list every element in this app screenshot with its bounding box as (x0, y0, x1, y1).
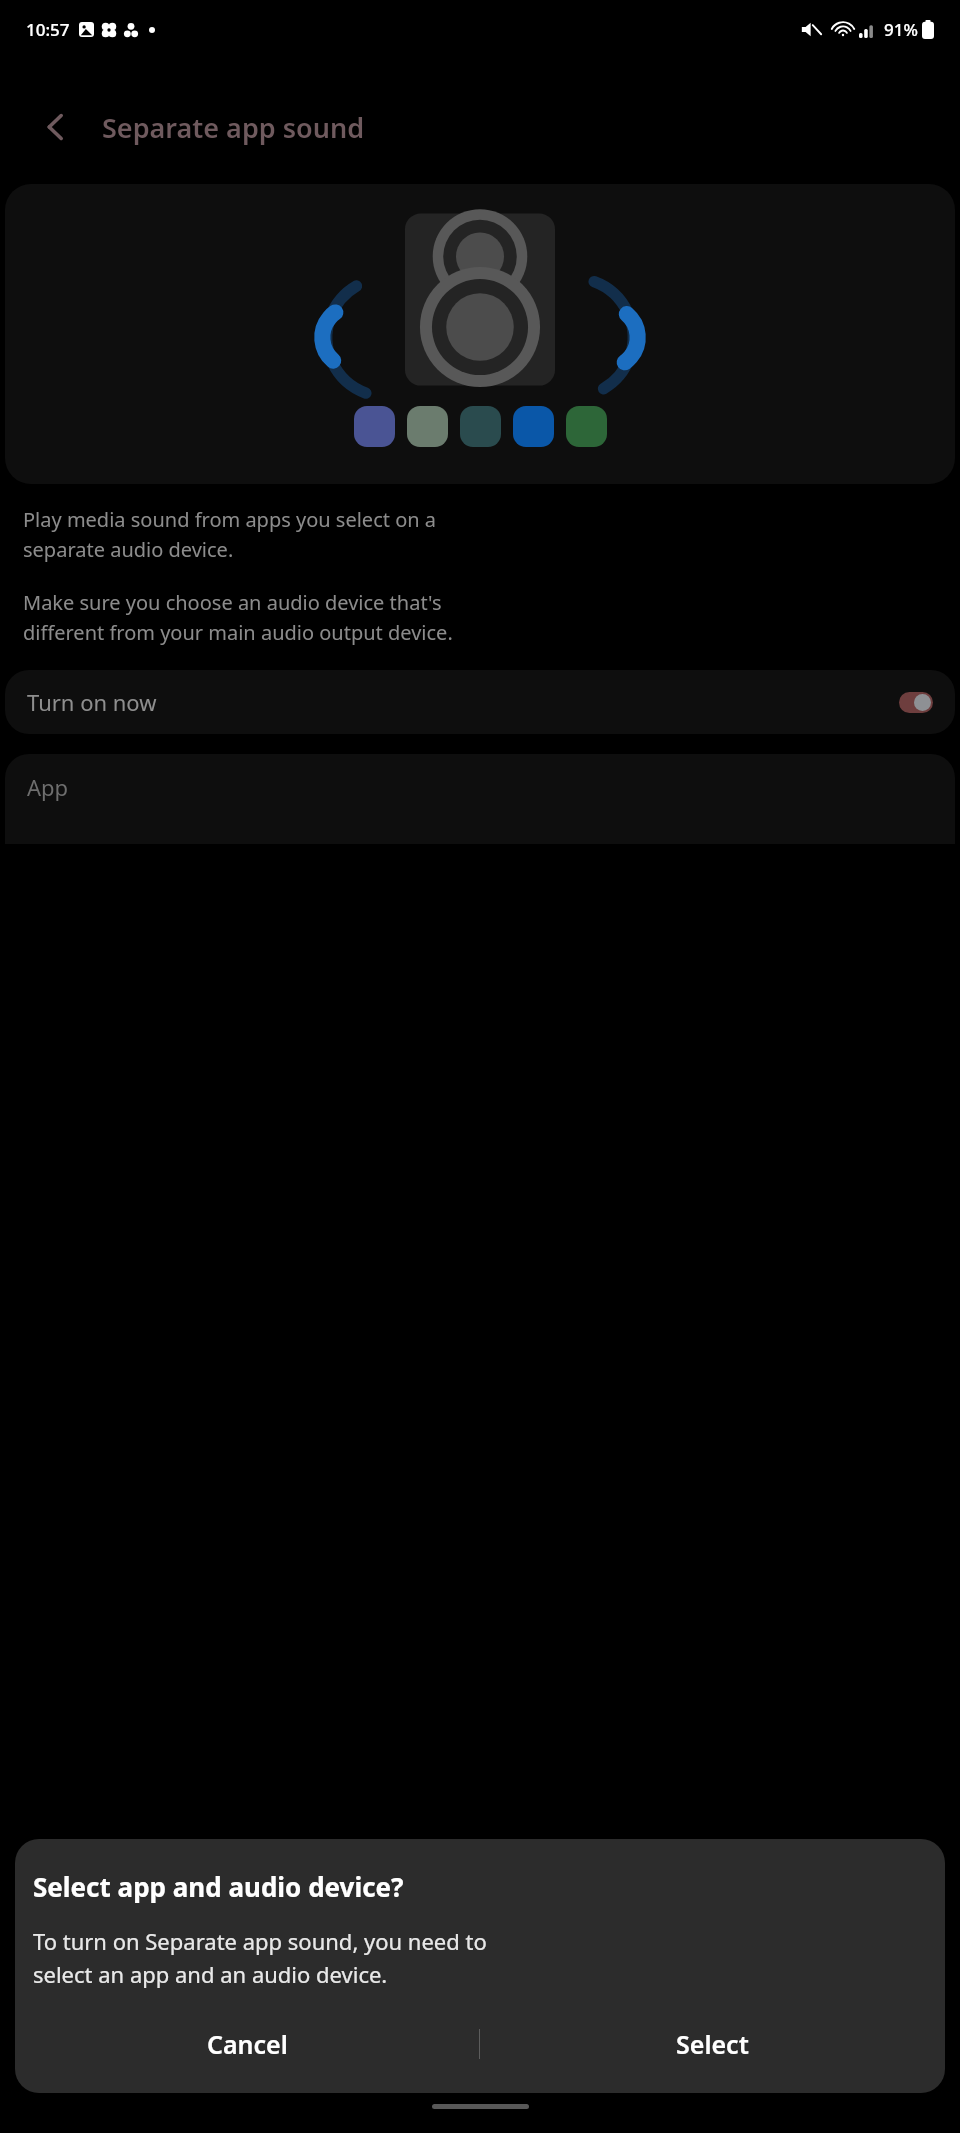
button[interactable]: Back (30, 101, 82, 153)
button[interactable]: Cancel (15, 2007, 479, 2081)
staticText: App (27, 772, 69, 802)
button[interactable] (513, 406, 554, 447)
button[interactable]: Turn on now (5, 670, 955, 734)
staticText: 91% (884, 18, 918, 41)
button[interactable]: App (5, 754, 955, 844)
staticText: 10:57 (26, 18, 70, 41)
staticText: Separate app sound (102, 109, 365, 146)
button[interactable]: Select (480, 2007, 945, 2081)
staticText: Select (676, 2027, 749, 2061)
button[interactable] (407, 406, 448, 447)
staticText: Cancel (207, 2027, 288, 2061)
button[interactable] (566, 406, 607, 447)
staticText: Select app and audio device? (33, 1869, 404, 1904)
button[interactable] (354, 406, 395, 447)
staticText: Make sure you choose an audio device tha… (23, 589, 453, 646)
staticText: Play media sound from apps you select on… (23, 506, 437, 563)
staticText: Turn on now (27, 687, 157, 717)
button[interactable] (460, 406, 501, 447)
staticText: To turn on Separate app sound, you need … (33, 1926, 487, 1989)
